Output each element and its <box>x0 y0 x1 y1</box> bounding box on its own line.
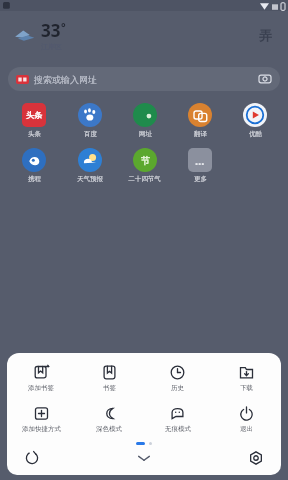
staticText: 下载 <box>240 384 253 392</box>
button[interactable]: 深色模式 <box>75 404 143 435</box>
staticText: 百度 <box>84 130 97 138</box>
staticText: 添加书签 <box>28 384 54 392</box>
staticText: 翻译 <box>194 130 207 138</box>
staticText: 天气预报 <box>77 175 103 183</box>
button[interactable]: 添加快捷方式 <box>7 404 75 435</box>
staticText: 无痕模式 <box>165 425 191 433</box>
button[interactable]: 翻译 <box>188 101 212 140</box>
button[interactable]: 退出 <box>212 404 281 435</box>
button[interactable]: 更多 <box>252 22 278 48</box>
button[interactable]: 扫一扫 <box>258 72 272 86</box>
button[interactable]: 优酷 <box>243 101 267 140</box>
staticText: 更多 <box>194 175 207 183</box>
button[interactable]: 33 <box>10 15 70 55</box>
button[interactable]: 搜索或输入网址 <box>8 67 280 91</box>
staticText: 33 <box>41 19 61 42</box>
button[interactable]: 历史 <box>143 363 212 394</box>
staticText: 网址 <box>139 130 152 138</box>
staticText: 头条 <box>26 110 42 120</box>
button[interactable]: 书签 <box>75 363 143 394</box>
button[interactable]: 添加书签 <box>7 363 75 394</box>
button[interactable]: 天气预报 <box>77 146 103 185</box>
button[interactable]: 头条 <box>22 101 46 140</box>
staticText: 节 <box>141 155 150 166</box>
button[interactable]: 节 <box>128 146 161 185</box>
button[interactable]: 网址 <box>133 101 157 140</box>
staticText: 搜索或输入网址 <box>34 74 97 85</box>
staticText: 书签 <box>103 384 116 392</box>
staticText: 携程 <box>28 175 41 183</box>
staticText: 添加快捷方式 <box>22 425 61 433</box>
staticText: 优酷 <box>249 130 262 138</box>
staticText: 头条 <box>28 130 41 138</box>
button[interactable]: 百度 <box>78 101 102 140</box>
staticText: 深色模式 <box>96 425 122 433</box>
staticText: 历史 <box>171 384 184 392</box>
staticText: ° <box>61 19 66 34</box>
staticText: 弄 <box>259 27 272 43</box>
button[interactable]: 刷新 <box>21 447 43 469</box>
button[interactable]: 收起 <box>131 445 157 471</box>
button[interactable]: 携程 <box>22 146 46 185</box>
staticText: 二十四节气 <box>128 175 161 183</box>
button[interactable]: 下载 <box>212 363 281 394</box>
staticText: … <box>195 153 205 168</box>
button[interactable]: 无痕模式 <box>143 404 212 435</box>
button[interactable]: … <box>188 146 212 185</box>
staticText: 退出 <box>240 425 253 433</box>
button[interactable]: 设置 <box>245 447 267 469</box>
